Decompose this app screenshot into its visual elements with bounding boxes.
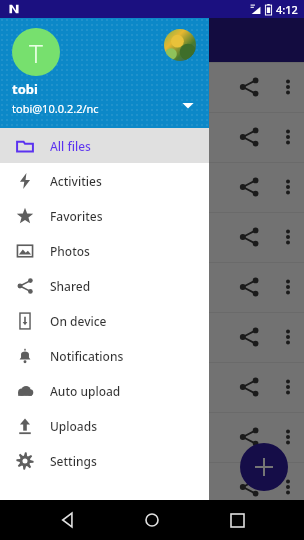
button[interactable]: All files [0,128,209,163]
button[interactable]: Settings [0,443,209,478]
button[interactable]: More options [278,477,298,497]
button[interactable]: Share [0,412,304,462]
button[interactable]: Share [0,462,304,512]
button[interactable]: Switch account [181,98,195,112]
button[interactable]: Activities [0,163,209,198]
button[interactable]: More options [278,227,298,247]
staticText: Activities [50,173,102,189]
button[interactable]: Share [0,312,304,362]
staticText: tobi [12,80,38,98]
button[interactable]: More options [278,177,298,197]
button[interactable]: Share [238,376,260,398]
button[interactable]: Share [0,112,304,162]
button[interactable]: More options [278,77,298,97]
staticText: T [29,35,43,70]
button[interactable]: T [0,18,209,128]
button[interactable]: Share [0,262,304,312]
button[interactable]: More options [278,377,298,397]
button[interactable]: On device [0,303,209,338]
button[interactable]: Auto upload [0,373,209,408]
button[interactable]: Recents [220,503,254,537]
staticText: Shared [50,278,91,294]
button[interactable]: More options [278,427,298,447]
button[interactable]: Account photo [164,29,196,61]
button[interactable]: Photos [0,233,209,268]
staticText: Favorites [50,208,103,224]
button[interactable]: More options [278,277,298,297]
button[interactable]: Shared [0,268,209,303]
button[interactable]: Back [51,503,85,537]
staticText: Auto upload [50,383,121,399]
button[interactable]: Favorites [0,198,209,233]
button[interactable]: Share [0,162,304,212]
staticText: Photos [50,243,90,259]
button[interactable]: Home [135,503,169,537]
button[interactable]: Add [240,443,288,491]
staticText: Notifications [50,348,124,364]
staticText: Settings [50,453,97,469]
button[interactable]: Share [238,226,260,248]
button[interactable]: Share [238,126,260,148]
button[interactable]: Share [238,326,260,348]
staticText: Uploads [50,418,98,434]
button[interactable]: Share [0,362,304,412]
button[interactable]: Notifications [0,338,209,373]
button[interactable]: Share [238,276,260,298]
staticText: On device [50,313,107,329]
button[interactable]: Share [0,212,304,262]
button[interactable]: More options [278,327,298,347]
staticText: 4:12 [276,2,298,17]
button[interactable]: Share [238,176,260,198]
button[interactable]: Uploads [0,408,209,443]
staticText: All files [50,138,91,154]
button[interactable]: Share [238,76,260,98]
button[interactable]: Share [238,476,260,498]
staticText: tobi@10.0.2.2/nc [12,101,99,116]
button[interactable]: Share [0,62,304,112]
button[interactable]: More options [278,127,298,147]
button[interactable]: Share [238,426,260,448]
